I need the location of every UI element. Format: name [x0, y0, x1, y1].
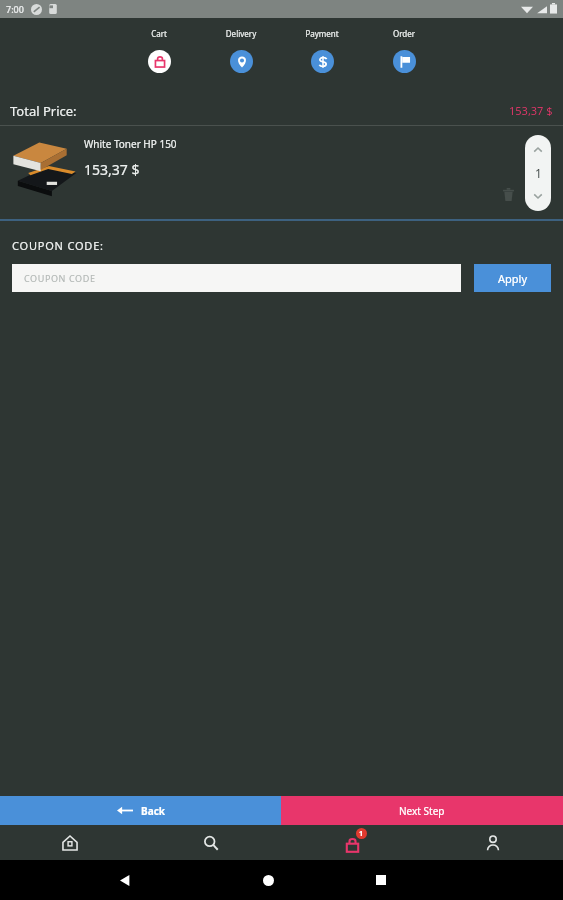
staticText: 1: [359, 829, 364, 839]
button[interactable]: Back: [0, 796, 281, 825]
button[interactable]: Decrease quantity: [528, 186, 548, 206]
staticText: Apply: [498, 271, 528, 286]
button[interactable]: Apply: [474, 264, 551, 292]
button[interactable]: Recents: [366, 865, 396, 895]
button[interactable]: Remove item: [497, 183, 519, 205]
button[interactable]: Increase quantity: [528, 140, 548, 160]
staticText: 153,37 $: [84, 160, 140, 179]
button[interactable]: Order: [373, 28, 435, 73]
button[interactable]: Cart: [281, 825, 422, 860]
button[interactable]: Home: [253, 865, 283, 895]
staticText: 153,37 $: [509, 103, 553, 118]
staticText: COUPON CODE: [24, 272, 96, 284]
staticText: Delivery: [210, 28, 272, 39]
staticText: 1: [535, 165, 542, 181]
staticText: Next Step: [399, 804, 445, 818]
staticText: Back: [141, 804, 165, 818]
staticText: Cart: [128, 28, 190, 39]
button[interactable]: Search: [140, 825, 281, 860]
button[interactable]: Delivery: [210, 28, 272, 73]
staticText: Order: [373, 28, 435, 39]
staticText: Payment: [291, 28, 353, 39]
staticText: Total Price:: [10, 102, 77, 120]
staticText: 7:00: [6, 3, 24, 15]
button[interactable]: Home: [0, 825, 140, 860]
button[interactable]: COUPON CODE: [12, 264, 461, 292]
staticText: White Toner HP 150: [84, 137, 177, 151]
button[interactable]: Next Step: [281, 796, 563, 825]
button[interactable]: Cart: [128, 28, 190, 73]
button[interactable]: Profile: [422, 825, 563, 860]
staticText: COUPON CODE:: [12, 238, 104, 253]
button[interactable]: Back: [110, 865, 140, 895]
button[interactable]: Payment: [291, 28, 353, 73]
